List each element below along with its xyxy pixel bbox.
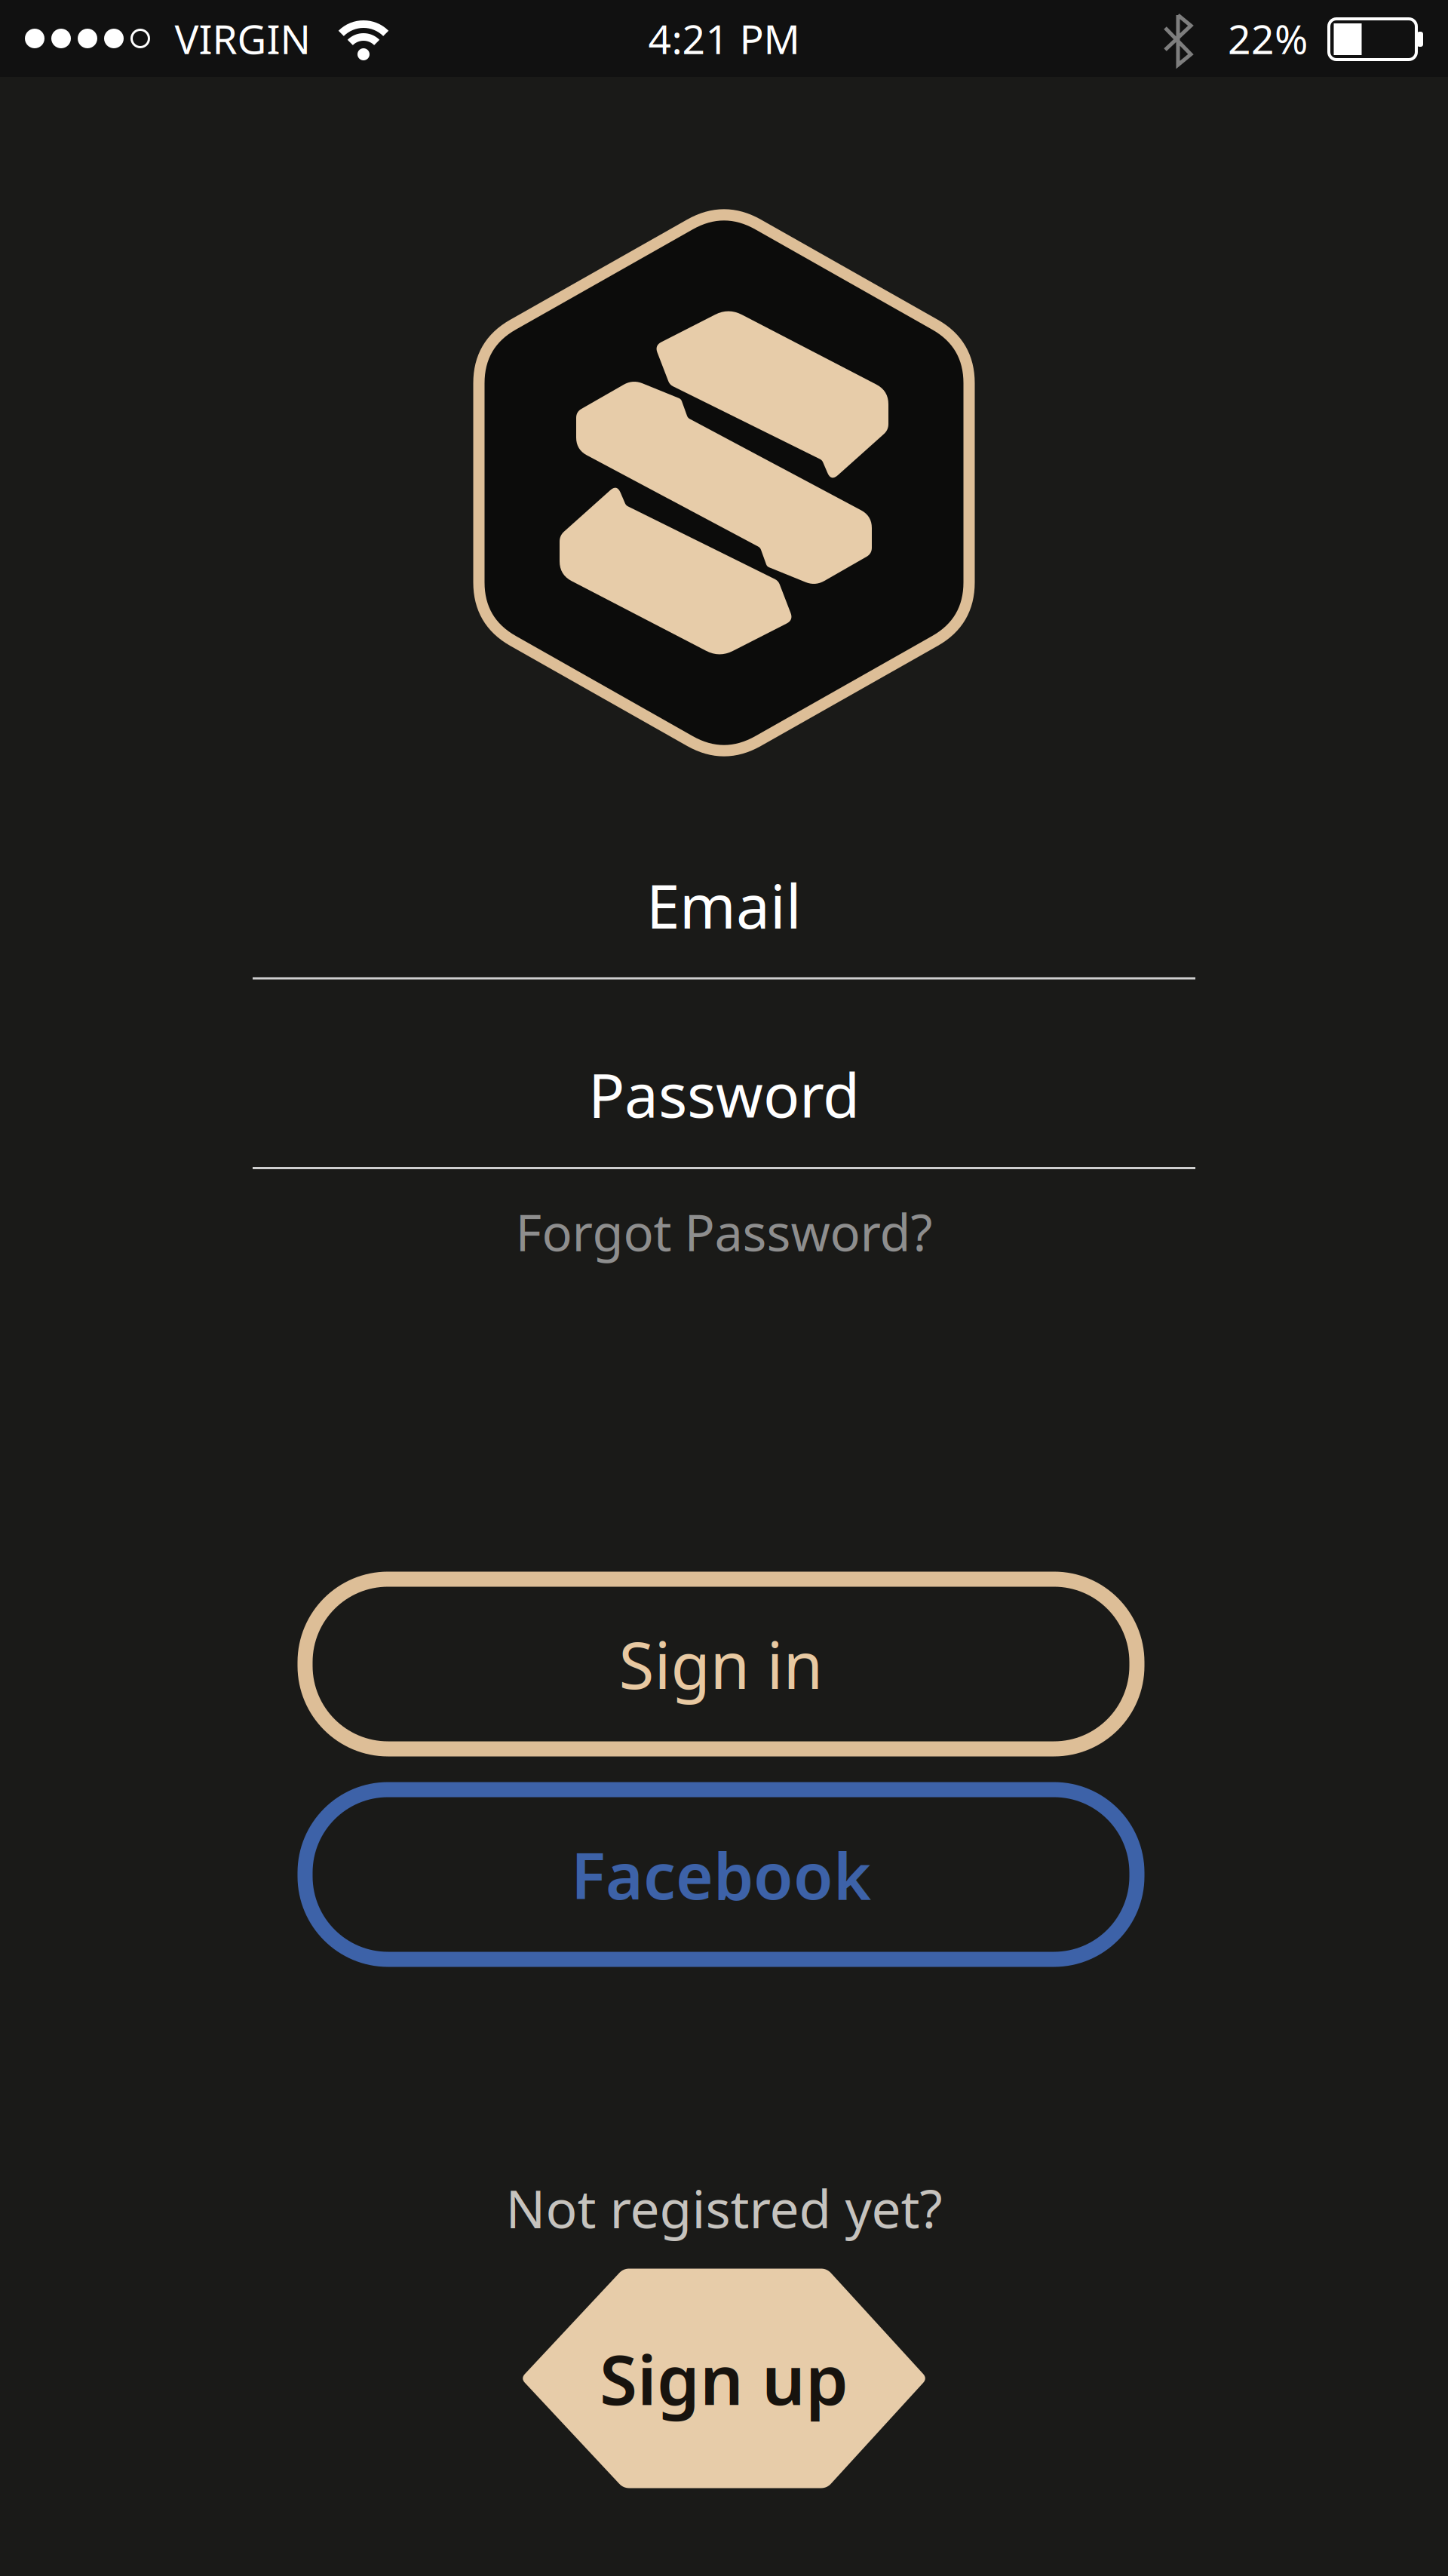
staticText: Forgot Password? (515, 1198, 933, 1265)
staticText: Email (646, 865, 802, 945)
staticText: Facebook (571, 1832, 871, 1917)
staticText: 4:21 PM (648, 12, 800, 65)
staticText: VIRGIN (175, 12, 311, 65)
staticText: Sign up (600, 2333, 848, 2424)
button[interactable]: Forgot Password? (515, 1198, 933, 1265)
button[interactable]: Sign in (305, 1579, 1137, 1749)
button[interactable]: Sign up (521, 2269, 927, 2488)
staticText: Not registred yet? (506, 2173, 942, 2243)
button[interactable]: Password (253, 1049, 1195, 1170)
staticText: Sign in (619, 1621, 823, 1707)
button[interactable]: Facebook (305, 1790, 1137, 1959)
staticText: Password (588, 1054, 860, 1134)
staticText: 22% (1228, 12, 1308, 65)
button[interactable]: Email (253, 860, 1195, 981)
